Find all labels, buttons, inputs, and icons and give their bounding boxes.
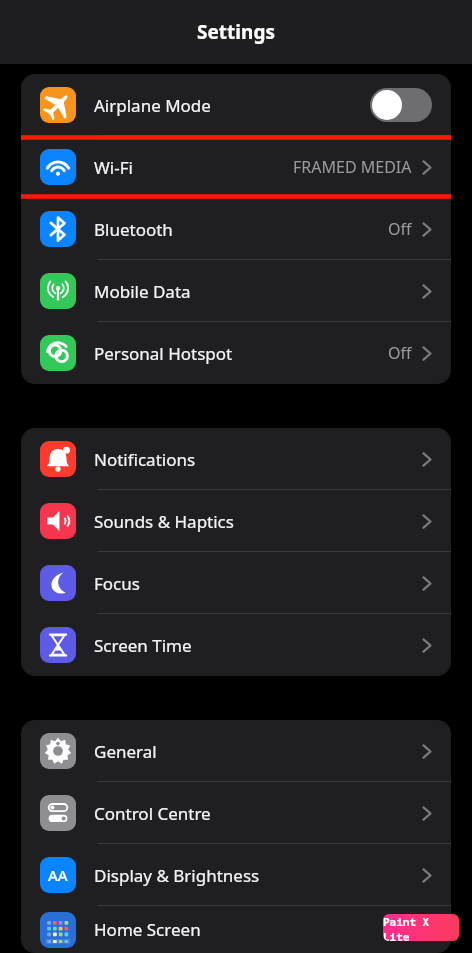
staticText: Paint X Lite (383, 914, 459, 941)
button[interactable]: Bluetooth (21, 198, 451, 260)
staticText: Off (388, 342, 412, 364)
staticText: Mobile Data (94, 280, 191, 303)
button[interactable]: Airplane Mode toggle (370, 88, 432, 122)
staticText: Sounds & Haptics (94, 510, 234, 533)
staticText: AA (48, 865, 68, 885)
button[interactable]: Wi-Fi (21, 136, 451, 198)
button[interactable]: Paint X Lite (383, 914, 459, 941)
button[interactable]: General (21, 720, 451, 782)
button[interactable]: Sounds & Haptics (21, 490, 451, 552)
button[interactable]: Notifications (21, 428, 451, 490)
staticText: Notifications (94, 448, 196, 471)
staticText: Airplane Mode (94, 94, 211, 117)
staticText: Display & Brightness (94, 864, 260, 887)
button[interactable]: Focus (21, 552, 451, 614)
staticText: Home Screen (94, 918, 201, 941)
staticText: Wi-Fi (94, 156, 133, 179)
staticText: FRAMED MEDIA (293, 156, 412, 178)
button[interactable]: Personal Hotspot (21, 322, 451, 384)
button[interactable]: Home Screen (21, 906, 451, 953)
button[interactable]: Mobile Data (21, 260, 451, 322)
staticText: Settings (197, 19, 275, 45)
staticText: Personal Hotspot (94, 342, 233, 365)
button[interactable]: Airplane Mode (21, 74, 451, 136)
staticText: General (94, 740, 157, 763)
staticText: Screen Time (94, 634, 192, 657)
button[interactable]: Control Centre (21, 782, 451, 844)
staticText: Bluetooth (94, 218, 173, 241)
staticText: Control Centre (94, 802, 211, 825)
staticText: Off (388, 218, 412, 240)
button[interactable]: AA (21, 844, 451, 906)
button[interactable]: Screen Time (21, 614, 451, 676)
staticText: Focus (94, 572, 140, 595)
